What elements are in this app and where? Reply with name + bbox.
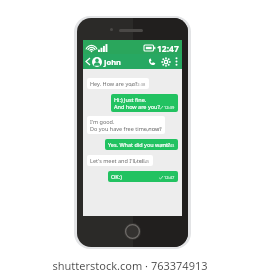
staticText: 12:43 [164,143,175,148]
staticText: 12:39 [164,105,175,110]
button[interactable]: Hi:) Just fine. [111,94,178,112]
staticText: 12:47 [164,175,175,180]
staticText: John [104,57,121,67]
staticText: I'm good. [90,118,115,125]
staticText: shutterstock.com · 763374913 [52,258,208,273]
button[interactable]: Call [145,54,159,69]
button[interactable]: Settings [159,54,172,69]
button[interactable]: Back [83,54,92,69]
button[interactable]: Yes. What did you want? [105,139,178,150]
staticText: Do you have free time now? [90,125,162,132]
staticText: 12:41 [151,127,162,132]
staticText: 12:45 [139,159,150,164]
staticText: OK:) [111,173,122,180]
staticText: Yes. What did you want? [108,141,171,148]
button[interactable]: Home [124,223,141,240]
button[interactable]: I'm good. [87,116,165,134]
staticText: And how are you? [114,103,160,110]
staticText: 12:47 [157,43,179,55]
staticText: Hey. How are you? [90,80,138,87]
staticText: 12:38 [135,82,146,87]
button[interactable]: OK:) [108,171,178,182]
button[interactable]: Let's meet and I'll tell. [87,155,153,166]
staticText: Hi:) Just fine. [114,96,147,103]
button[interactable]: Hey. How are you? [87,78,149,89]
button[interactable]: More options [172,54,181,69]
staticText: Let's meet and I'll tell. [90,157,147,164]
